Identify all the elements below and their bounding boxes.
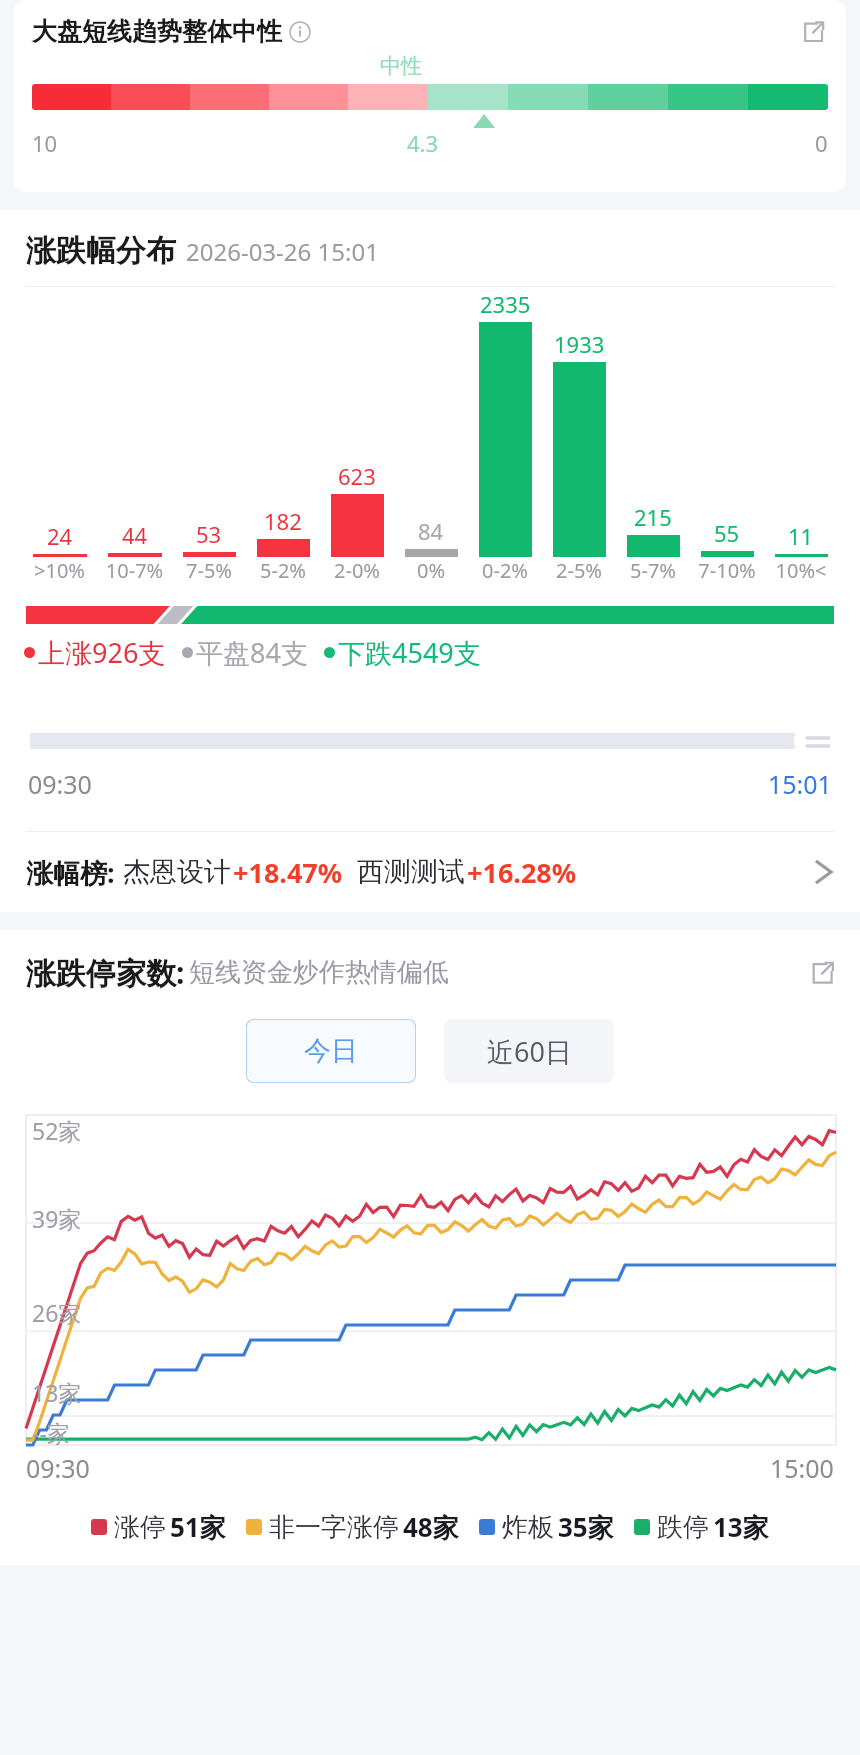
staticText: 0-2% [468, 557, 542, 584]
staticText: 涨跌停家数: [26, 952, 185, 993]
staticText: 短线资金炒作热情偏低 [189, 956, 449, 989]
staticText: 7-5% [172, 557, 246, 584]
staticText: 下跌4549支 [338, 634, 481, 671]
staticText: 55 [714, 518, 740, 548]
staticText: 15:00 [770, 1451, 834, 1485]
staticText: 10 [32, 128, 58, 158]
staticText: 5-2% [246, 557, 320, 584]
staticText: 2026-03-26 15:01 [186, 235, 379, 268]
staticText: 西测测试 [357, 855, 465, 889]
staticText: +16.28% [467, 854, 577, 891]
staticText: 2-5% [542, 557, 616, 584]
staticText: 13家 [32, 1377, 82, 1408]
staticText: 2335 [480, 289, 531, 319]
staticText: 09:30 [26, 1451, 90, 1485]
staticText: 涨幅榜: [26, 854, 115, 891]
staticText: 24 [47, 521, 73, 551]
staticText: 48家 [403, 1509, 459, 1545]
staticText: 近60日 [487, 1033, 572, 1070]
staticText: 35家 [558, 1509, 614, 1545]
button[interactable]: 大盘短线趋势整体中性 [14, 0, 846, 192]
staticText: --家 [32, 1417, 70, 1448]
button[interactable]: 分享 [806, 957, 838, 989]
staticText: 84 [418, 516, 444, 546]
staticText: 5-7% [616, 557, 690, 584]
staticText: 炸板 [502, 1511, 554, 1544]
staticText: 0 [815, 128, 828, 158]
button[interactable]: 炸板 [479, 1509, 614, 1545]
staticText: 非一字涨停 [269, 1511, 399, 1544]
staticText: 10-7% [97, 557, 172, 584]
staticText: 涨跌幅分布 [26, 232, 176, 270]
staticText: 44 [122, 520, 148, 550]
staticText: 52家 [32, 1115, 82, 1146]
staticText: 2-0% [320, 557, 394, 584]
staticText: 15:01 [768, 767, 832, 801]
staticText: 0% [394, 557, 468, 584]
button[interactable]: 说明 [289, 21, 311, 43]
staticText: 26家 [32, 1297, 82, 1328]
staticText: 跌停 [657, 1511, 709, 1544]
staticText: 10%< [764, 557, 838, 584]
staticText: 623 [338, 461, 376, 491]
staticText: 53 [196, 519, 222, 549]
staticText: 7-10% [690, 557, 764, 584]
button[interactable]: 涨停 [91, 1509, 226, 1545]
staticText: 中性 [380, 53, 422, 79]
staticText: 13家 [713, 1509, 769, 1545]
staticText: 平盘84支 [196, 634, 308, 671]
staticText: 大盘短线趋势整体中性 [32, 16, 282, 47]
staticText: 今日 [304, 1034, 358, 1068]
staticText: 涨停 [114, 1511, 166, 1544]
button[interactable]: 涨幅榜: [26, 832, 834, 912]
button[interactable]: 拖动手柄 [794, 723, 842, 759]
staticText: 182 [264, 506, 302, 536]
staticText: 4.3 [407, 128, 439, 158]
button[interactable]: 非一字涨停 [246, 1509, 459, 1545]
staticText: 51家 [170, 1509, 226, 1545]
staticText: 09:30 [28, 767, 92, 801]
staticText: 杰恩设计 [123, 855, 231, 889]
staticText: 39家 [32, 1203, 82, 1234]
staticText: 上涨926支 [38, 634, 166, 671]
staticText: 1933 [554, 329, 605, 359]
staticText: 11 [788, 521, 814, 551]
staticText: +18.47% [233, 854, 343, 891]
button[interactable]: 近60日 [444, 1019, 614, 1083]
staticText: >10% [22, 557, 97, 584]
button[interactable]: 分享 [798, 17, 828, 47]
button[interactable]: 今日 [246, 1019, 416, 1083]
button[interactable]: 跌停 [634, 1509, 769, 1545]
staticText: 215 [634, 502, 672, 532]
